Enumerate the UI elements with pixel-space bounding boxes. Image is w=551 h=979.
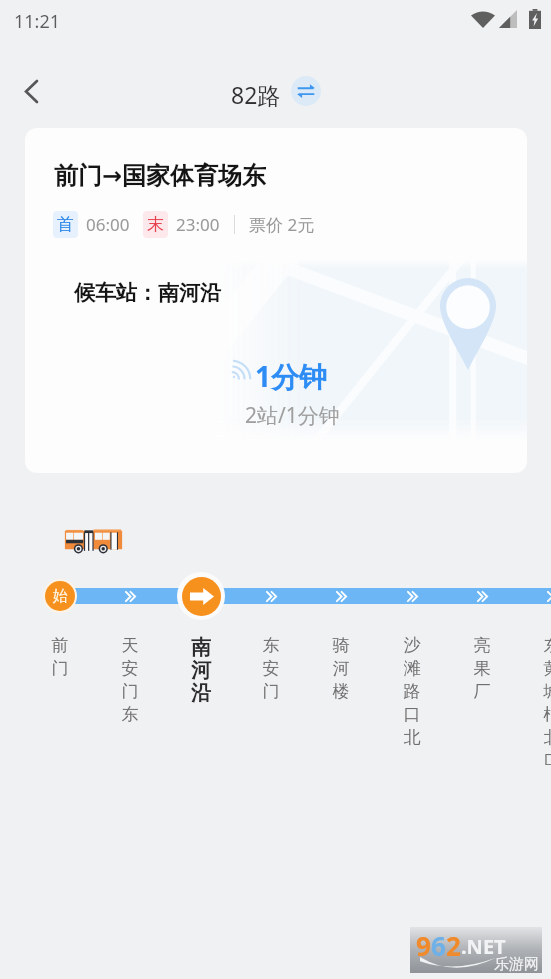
button[interactable]: 始 bbox=[45, 581, 75, 611]
button[interactable]: 东安门 bbox=[257, 635, 285, 765]
staticText: 候车站：南河沿 bbox=[74, 280, 221, 306]
staticText: 东安门 bbox=[257, 635, 285, 703]
staticText: 6 bbox=[431, 928, 446, 963]
staticText: 2站/1分钟 bbox=[245, 401, 340, 430]
button[interactable]: Switch direction bbox=[291, 76, 321, 106]
staticText: 亮果厂 bbox=[468, 635, 496, 703]
button[interactable]: 天安门东 bbox=[116, 635, 144, 765]
button[interactable]: 东黄城根北口 bbox=[538, 635, 551, 765]
staticText: 骑河楼 bbox=[327, 635, 355, 703]
staticText: 票价 2元 bbox=[249, 213, 315, 236]
staticText: 乐游网 bbox=[494, 955, 539, 974]
staticText: 东黄城根北口 bbox=[538, 635, 551, 765]
staticText: 南河沿 bbox=[187, 635, 215, 706]
button[interactable]: 骑河楼 bbox=[327, 635, 355, 765]
button[interactable]: 沙滩路口北 bbox=[398, 635, 426, 765]
staticText: 始 bbox=[53, 587, 68, 606]
staticText: 11:21 bbox=[14, 9, 61, 34]
button[interactable]: 亮果厂 bbox=[468, 635, 496, 765]
staticText: 沙滩路口北 bbox=[398, 635, 426, 749]
staticText: 前门→国家体育场东 bbox=[54, 161, 267, 191]
staticText: 前门 bbox=[46, 635, 74, 680]
staticText: 9 bbox=[416, 928, 431, 963]
button[interactable]: 前门 bbox=[46, 635, 74, 765]
staticText: 首 bbox=[57, 214, 74, 235]
staticText: 23:00 bbox=[176, 213, 220, 236]
button[interactable]: Current stop bbox=[182, 577, 221, 616]
button[interactable]: 南河沿 bbox=[187, 635, 215, 765]
staticText: 82路 bbox=[231, 79, 281, 110]
staticText: 2 bbox=[446, 928, 461, 963]
button[interactable]: 前门→国家体育场东 bbox=[25, 128, 527, 473]
staticText: 1分钟 bbox=[255, 357, 328, 395]
staticText: 末 bbox=[147, 214, 164, 235]
staticText: .NET bbox=[461, 933, 506, 960]
staticText: 天安门东 bbox=[116, 635, 144, 726]
staticText: 06:00 bbox=[86, 213, 130, 236]
button[interactable]: Back bbox=[8, 68, 54, 114]
